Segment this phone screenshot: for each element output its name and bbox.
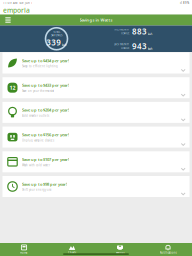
- staticText: 339: [46, 37, 61, 48]
- staticText: Save up to $98 per year!: [22, 181, 67, 187]
- staticText: Home: [20, 251, 28, 254]
- button[interactable]: Save up to $204 per year!: [2, 102, 189, 123]
- button[interactable]: Save up to $434 per year!: [2, 52, 189, 73]
- staticText: Shift your energy use: [22, 188, 52, 191]
- staticText: kwh: [148, 33, 153, 36]
- staticText: Swap to efficient lighting: [22, 64, 58, 68]
- button[interactable]: Notifications: [144, 243, 192, 256]
- staticText: Savings in Watts: [79, 17, 112, 23]
- staticText: Save up to $204 per year!: [22, 107, 69, 113]
- button[interactable]: Save up to $156 per year!: [2, 127, 189, 148]
- button[interactable]: Menu: [2, 14, 14, 25]
- staticText: Wash with cold water: [22, 163, 50, 167]
- button[interactable]: Charts: [48, 243, 96, 256]
- button[interactable]: Savings: [96, 243, 144, 256]
- staticText: kwh: [62, 44, 67, 47]
- staticText: kwh: [148, 47, 153, 51]
- staticText: emporia: [3, 6, 30, 15]
- staticText: ıl 89%: [180, 1, 189, 5]
- staticText: LAST MONTH: [114, 42, 129, 46]
- button[interactable]: Home: [0, 243, 48, 256]
- staticText: Save up to $156 per year!: [22, 132, 69, 137]
- staticText: USAGE: [121, 46, 129, 50]
- staticText: Unplug vampire devices: [22, 139, 54, 142]
- staticText: 11:09 AM Tue Jun 1: [3, 1, 33, 5]
- staticText: Save on your thermostat: [22, 89, 54, 93]
- staticText: USAGE: [121, 31, 129, 35]
- staticText: Save up to $107 per year!: [22, 157, 69, 162]
- button[interactable]: Save up to $98 per year!: [2, 176, 189, 197]
- button[interactable]: Save up to $107 per year!: [2, 151, 189, 172]
- staticText: Save up to $433 per year!: [22, 83, 69, 88]
- staticText: Add smarter outlets: [22, 114, 49, 117]
- staticText: Charts: [68, 251, 76, 254]
- staticText: SAVINGS: [51, 33, 62, 37]
- staticText: 943: [132, 41, 147, 51]
- staticText: TOTAL: [53, 30, 60, 33]
- staticText: 12: [9, 84, 15, 91]
- staticText: 883: [132, 26, 147, 37]
- staticText: THIS MONTH: [114, 28, 129, 31]
- staticText: Save up to $434 per year!: [22, 58, 69, 63]
- button[interactable]: 12: [2, 77, 189, 98]
- staticText: Notifications: [159, 251, 176, 254]
- staticText: Savings: [115, 251, 124, 254]
